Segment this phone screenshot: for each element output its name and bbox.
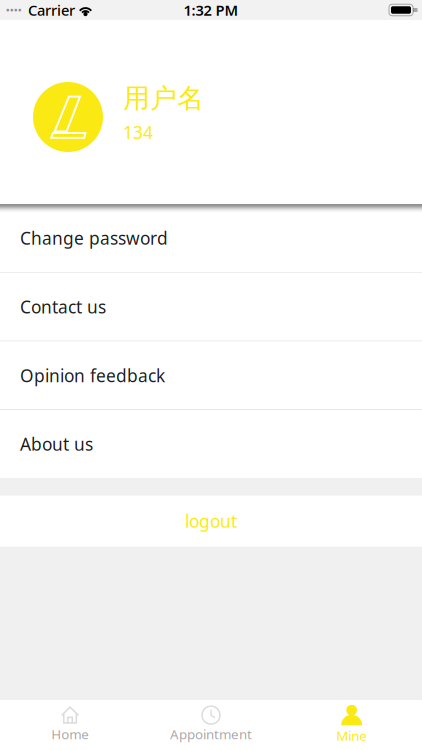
- staticText: Contact us: [20, 295, 106, 318]
- staticText: Change password: [20, 226, 168, 249]
- button[interactable]: Change password: [0, 204, 422, 272]
- button[interactable]: Opinion feedback: [0, 341, 422, 409]
- button[interactable]: About us: [0, 410, 422, 478]
- staticText: Mine: [336, 727, 367, 744]
- staticText: logout: [185, 510, 237, 533]
- staticText: Carrier: [28, 0, 75, 20]
- staticText: 1:32 PM: [183, 0, 238, 20]
- staticText: About us: [20, 433, 93, 456]
- staticText: Opinion feedback: [20, 364, 165, 387]
- staticText: ••••: [6, 4, 22, 16]
- button[interactable]: logout: [0, 496, 422, 547]
- staticText: 134: [123, 121, 153, 144]
- button[interactable]: 用户名: [0, 20, 422, 204]
- staticText: Home: [51, 725, 89, 743]
- staticText: 用户名: [123, 82, 204, 115]
- button[interactable]: Appointment: [141, 700, 281, 750]
- button[interactable]: Contact us: [0, 273, 422, 341]
- button[interactable]: Mine: [281, 700, 422, 750]
- staticText: Appointment: [170, 725, 252, 743]
- button[interactable]: Home: [0, 700, 141, 750]
